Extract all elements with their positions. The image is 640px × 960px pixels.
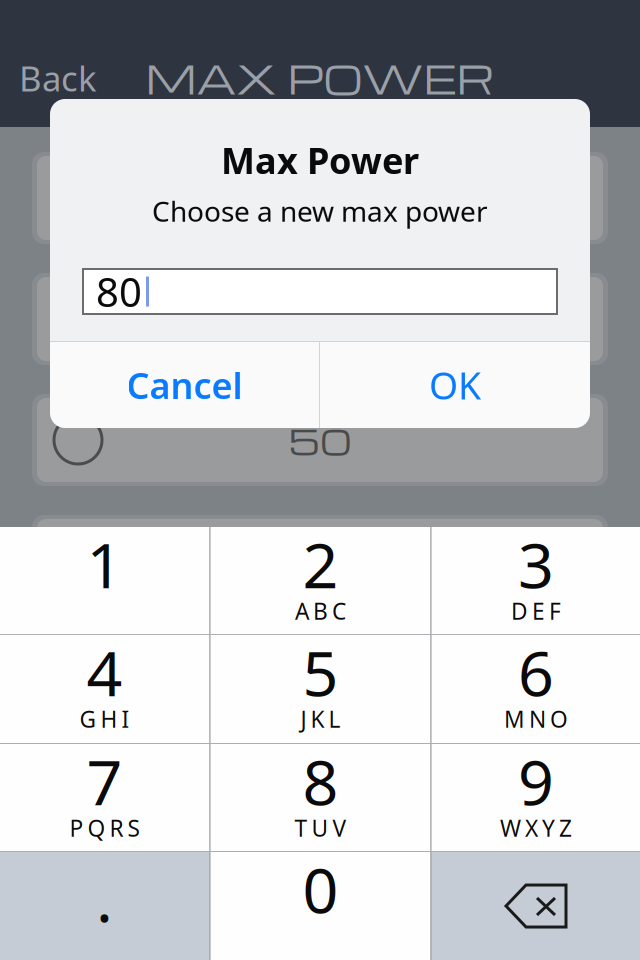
staticText: 50 [288,416,352,464]
staticText: WXYZ [500,813,572,843]
button[interactable]: 0 [210,852,430,960]
staticText: Choose a new max power [152,192,488,230]
staticText: . [96,856,113,940]
button[interactable]: 2 [210,527,430,634]
staticText: MAX POWER [145,51,494,105]
button[interactable]: 7 [0,744,209,851]
button[interactable]: 9 [431,744,640,851]
button[interactable]: Decimal point [0,852,209,960]
staticText: 5 [302,630,338,714]
staticText: 1 [86,522,122,606]
button[interactable]: Back [0,54,123,102]
staticText: ABC [295,596,346,626]
staticText: DEF [511,596,561,626]
staticText: 6 [518,630,554,714]
button[interactable]: OK [320,342,590,428]
staticText: 2 [302,522,338,606]
button[interactable]: Delete [431,852,640,960]
staticText: Max Power [221,136,419,184]
staticText: 9 [518,739,554,823]
staticText: OK [429,360,481,410]
staticText: GHI [79,704,129,734]
staticText: 7 [86,739,122,823]
button[interactable]: 4 [0,635,209,743]
staticText: 4 [86,630,122,714]
button[interactable]: 8 [210,744,430,851]
staticText: 3 [518,522,554,606]
button[interactable]: 5 [210,635,430,743]
staticText: 80 [96,265,142,318]
staticText: MNO [504,704,568,734]
staticText: Back [19,55,97,101]
button[interactable]: Cancel [50,342,319,428]
staticText: Cancel [126,361,242,409]
staticText: PQRS [69,813,139,843]
staticText: TUV [294,813,346,843]
staticText: JKL [300,704,340,734]
button[interactable]: 1 [0,527,209,634]
button[interactable]: 6 [431,635,640,743]
staticText: 0 [302,847,338,931]
staticText: 8 [302,739,338,823]
button[interactable]: 3 [431,527,640,634]
